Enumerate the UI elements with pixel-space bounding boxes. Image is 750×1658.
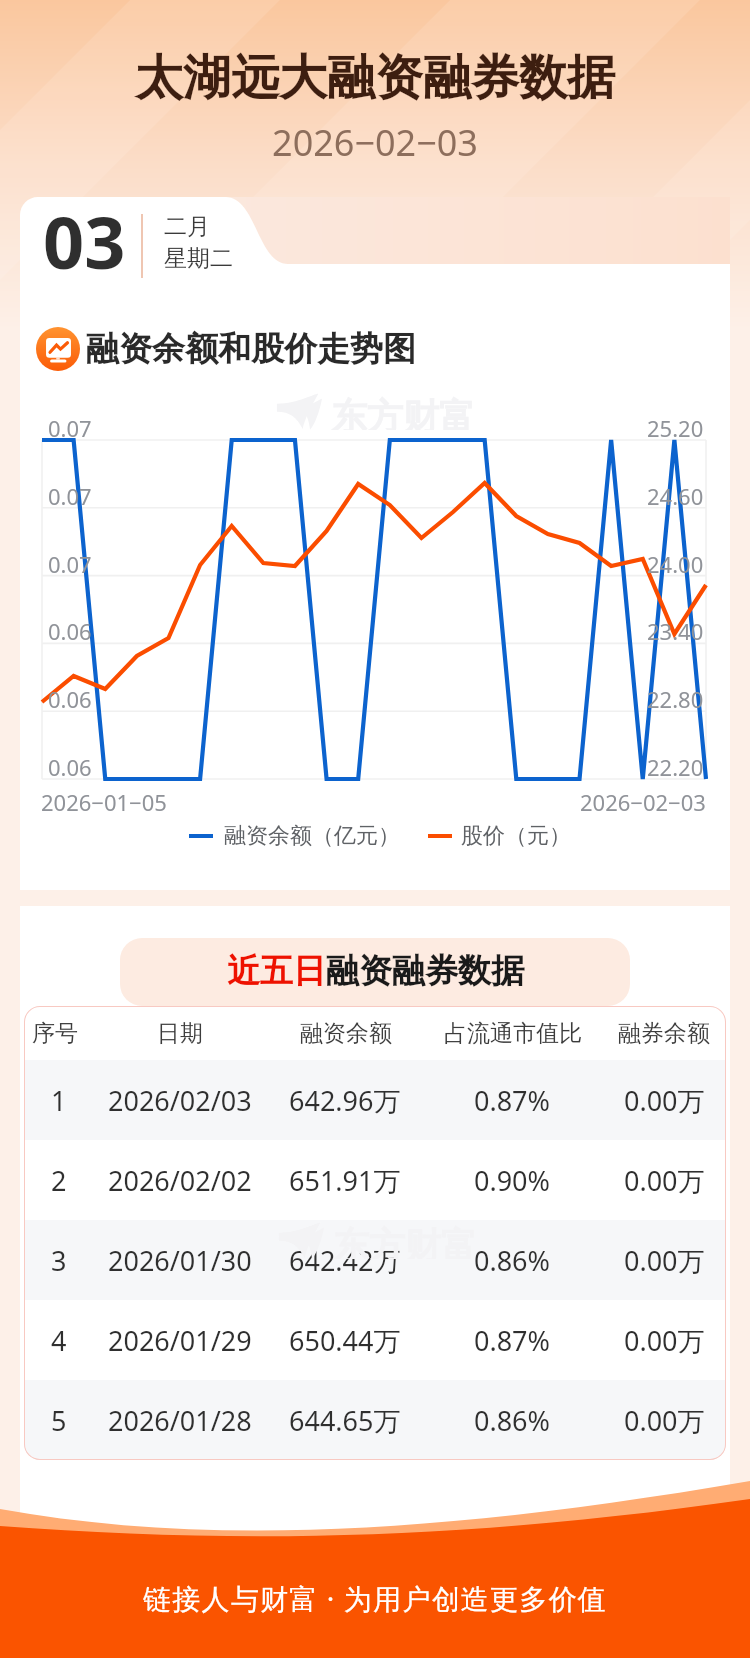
staticText: 650.44万 bbox=[289, 1322, 401, 1359]
staticText: 融资余额（亿元） bbox=[224, 822, 400, 850]
staticText: 0.00万 bbox=[624, 1242, 705, 1279]
staticText: 0.00万 bbox=[624, 1322, 705, 1359]
staticText: 22.80 bbox=[647, 684, 704, 714]
staticText: 0.07 bbox=[48, 481, 92, 511]
staticText: 2026/01/29 bbox=[108, 1322, 252, 1359]
staticText: 0.87% bbox=[474, 1322, 551, 1359]
staticText: 序号 bbox=[32, 1019, 78, 1048]
staticText: 2026/02/02 bbox=[108, 1162, 252, 1199]
button[interactable]: 2 bbox=[24, 1140, 726, 1220]
staticText: 0.06 bbox=[48, 684, 92, 714]
staticText: 2026−02−03 bbox=[0, 118, 750, 167]
staticText: 星期二 bbox=[164, 244, 233, 273]
staticText: 2026−02−03 bbox=[580, 787, 706, 817]
staticText: 03 bbox=[43, 192, 126, 290]
staticText: 2026−01−05 bbox=[41, 787, 167, 817]
staticText: 融资余额 bbox=[300, 1019, 392, 1048]
staticText: 0.90% bbox=[474, 1162, 551, 1199]
staticText: 24.00 bbox=[647, 549, 704, 579]
staticText: 链接人与财富 · 为用户创造更多价值 bbox=[0, 1579, 750, 1617]
staticText: 5 bbox=[51, 1402, 67, 1439]
staticText: 0.07 bbox=[48, 549, 92, 579]
staticText: 东方财富 bbox=[331, 394, 475, 430]
staticText: 0.07 bbox=[48, 413, 92, 443]
staticText: 0.06 bbox=[48, 616, 92, 646]
staticText: 日期 bbox=[157, 1019, 203, 1048]
staticText: 0.86% bbox=[474, 1242, 551, 1279]
staticText: 24.60 bbox=[647, 481, 704, 511]
staticText: 651.91万 bbox=[289, 1162, 401, 1199]
button[interactable]: 4 bbox=[24, 1300, 726, 1380]
staticText: 0.00万 bbox=[624, 1162, 705, 1199]
staticText: 23.40 bbox=[647, 616, 704, 646]
staticText: 2 bbox=[51, 1162, 67, 1199]
button[interactable]: Chart bbox=[36, 327, 80, 371]
staticText: 644.65万 bbox=[289, 1402, 401, 1439]
staticText: 太湖远大融资融券数据 bbox=[0, 48, 750, 108]
staticText: 642.96万 bbox=[289, 1082, 401, 1119]
staticText: 642.42万 bbox=[289, 1242, 401, 1279]
staticText: 二月 bbox=[164, 212, 210, 241]
staticText: 占流通市值比 bbox=[444, 1019, 582, 1048]
staticText: 2026/01/28 bbox=[108, 1402, 252, 1439]
staticText: 融券余额 bbox=[618, 1019, 710, 1048]
staticText: 2026/01/30 bbox=[108, 1242, 252, 1279]
staticText: 近五日融资融券数据 bbox=[227, 950, 524, 992]
staticText: 4 bbox=[51, 1322, 67, 1359]
staticText: 0.87% bbox=[474, 1082, 551, 1119]
staticText: 股价（元） bbox=[461, 822, 571, 850]
staticText: 0.86% bbox=[474, 1402, 551, 1439]
staticText: 东方财富 bbox=[333, 1223, 477, 1259]
button[interactable]: 3 bbox=[24, 1220, 726, 1300]
staticText: 1 bbox=[51, 1082, 67, 1119]
staticText: 3 bbox=[51, 1242, 67, 1279]
staticText: 0.00万 bbox=[624, 1402, 705, 1439]
staticText: 2026/02/03 bbox=[108, 1082, 252, 1119]
button[interactable]: 5 bbox=[24, 1380, 726, 1460]
button[interactable]: 1 bbox=[24, 1060, 726, 1140]
staticText: 融资余额和股价走势图 bbox=[86, 328, 416, 370]
staticText: 25.20 bbox=[647, 413, 704, 443]
staticText: 0.00万 bbox=[624, 1082, 705, 1119]
staticText: 0.06 bbox=[48, 752, 92, 782]
staticText: 22.20 bbox=[647, 752, 704, 782]
